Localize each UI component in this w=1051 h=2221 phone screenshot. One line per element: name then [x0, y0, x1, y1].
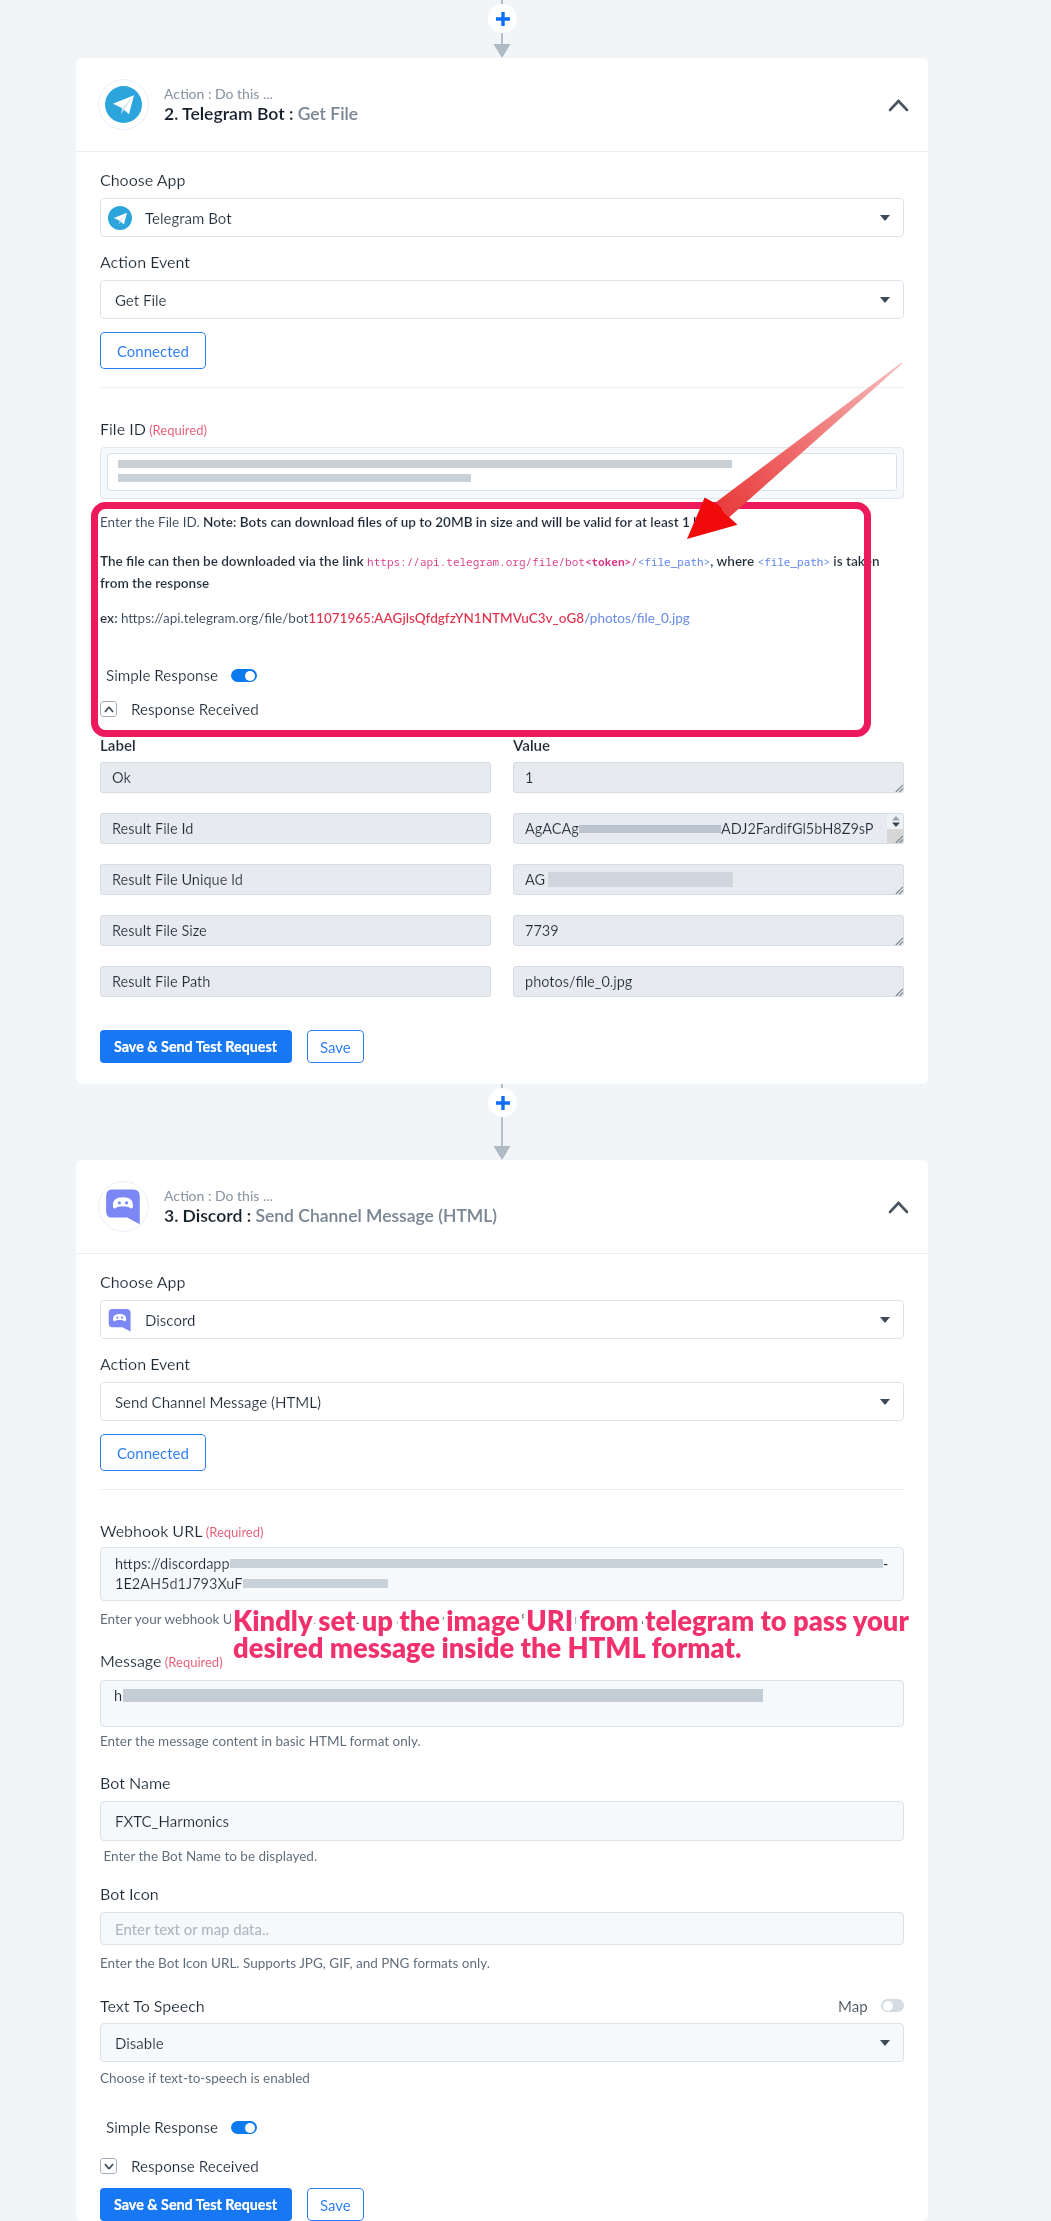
staticText: Simple Response	[106, 2118, 219, 2136]
staticText: Value	[513, 736, 904, 754]
button[interactable]: Simple Response	[100, 666, 257, 684]
button[interactable]: Action : Do this ...	[76, 58, 928, 151]
staticText: Discord	[145, 1311, 196, 1329]
button[interactable]: FXTC_Harmonics	[100, 1801, 904, 1841]
button[interactable]: Turn off	[231, 2121, 257, 2134]
button[interactable]: Result File Id	[100, 813, 491, 844]
staticText: Action : Do this ...	[164, 85, 273, 102]
button[interactable]: Ok	[100, 762, 491, 793]
staticText: 2. Telegram Bot : Get File	[164, 103, 359, 124]
staticText: AG	[525, 871, 546, 888]
staticText: The file can then be downloaded via the …	[100, 553, 904, 591]
staticText: Get File	[115, 291, 167, 309]
staticText: photos/file_0.jpg	[525, 973, 633, 990]
button[interactable]: Add step	[488, 4, 517, 33]
button[interactable]: 7739	[513, 915, 904, 946]
button[interactable]: Save & Send Test Request	[100, 2188, 292, 2221]
button[interactable]: Enter text or map data..	[100, 1912, 904, 1945]
button[interactable]: Add step	[488, 1088, 517, 1117]
staticText: Enter the File ID. Note: Bots can downlo…	[100, 514, 722, 530]
button[interactable]: Connected	[100, 332, 206, 369]
staticText: FXTC_Harmonics	[115, 1812, 230, 1830]
staticText: File ID (Required)	[100, 419, 207, 438]
staticText: Save	[320, 1038, 351, 1056]
staticText: Bot Name	[100, 1773, 171, 1792]
staticText: Send Channel Message (HTML)	[115, 1393, 321, 1411]
button[interactable]: Result File Size	[100, 915, 491, 946]
staticText: 1	[525, 769, 534, 786]
button[interactable]: Result File Path	[100, 966, 491, 997]
button[interactable]: Action : Do this ...	[76, 1160, 928, 1253]
button[interactable]: Response Received	[100, 2157, 259, 2175]
button[interactable]: Save	[307, 1030, 364, 1063]
staticText: Webhook URL (Required)	[100, 1521, 264, 1540]
staticText: Result File Id	[112, 820, 194, 837]
button[interactable]: Connected	[100, 1434, 206, 1471]
staticText: Enter your webhook URL. Follow the steps…	[100, 1611, 668, 1627]
button[interactable]: Get File	[100, 280, 904, 319]
staticText: Action Event	[100, 252, 191, 271]
staticText: Result File Size	[112, 922, 207, 939]
staticText: Simple Response	[106, 666, 219, 684]
button[interactable]: Save	[307, 2188, 364, 2221]
staticText: Ok	[112, 769, 131, 786]
staticText: Bot Icon	[100, 1884, 159, 1903]
staticText: Label	[100, 736, 491, 754]
button[interactable]: https://discordapp	[100, 1547, 904, 1601]
staticText: Save	[320, 2196, 351, 2214]
staticText: Action Event	[100, 1354, 191, 1373]
button[interactable]: Collapse step	[878, 85, 918, 125]
button[interactable]: Disable	[100, 2023, 904, 2062]
staticText: https://discordapp	[115, 1555, 230, 1572]
staticText: Action : Do this ...	[164, 1187, 273, 1204]
staticText: -	[883, 1555, 889, 1572]
staticText: Enter the Bot Icon URL. Supports JPG, GI…	[100, 1955, 490, 1971]
staticText: Result File Path	[112, 973, 211, 990]
staticText: Message (Required)	[100, 1651, 223, 1670]
staticText: Response Received	[131, 2157, 259, 2175]
button[interactable]: Response Received	[100, 700, 259, 718]
staticText: h	[114, 1687, 123, 1704]
staticText: AgACAg	[525, 820, 579, 837]
staticText: Response Received	[131, 700, 259, 718]
button[interactable]: Discord	[100, 1300, 904, 1339]
button[interactable]: 1	[513, 762, 904, 793]
button[interactable]	[100, 447, 904, 499]
staticText: Choose App	[100, 170, 186, 189]
staticText: Enter the message content in basic HTML …	[100, 1733, 421, 1749]
staticText: ADJ2FardifGl5bH8Z9sP	[721, 820, 874, 837]
staticText: Connected	[117, 1444, 189, 1462]
staticText: Connected	[117, 342, 189, 360]
button[interactable]: Save & Send Test Request	[100, 1030, 292, 1063]
button[interactable]: Result File Unique Id	[100, 864, 491, 895]
staticText: Save & Send Test Request	[114, 2196, 278, 2213]
button[interactable]: AgACAg	[513, 813, 904, 844]
staticText: Choose App	[100, 1272, 186, 1291]
staticText: Enter text or map data..	[115, 1920, 270, 1938]
staticText: Choose if text-to-speech is enabled	[100, 2070, 310, 2086]
button[interactable]: Simple Response	[100, 2118, 257, 2136]
staticText: Disable	[115, 2034, 164, 2052]
staticText: Enter the Bot Name to be displayed.	[100, 1848, 318, 1864]
button[interactable]: photos/file_0.jpg	[513, 966, 904, 997]
staticText: Telegram Bot	[145, 209, 232, 227]
button[interactable]: Send Channel Message (HTML)	[100, 1382, 904, 1421]
staticText: Save & Send Test Request	[114, 1038, 278, 1055]
button[interactable]: Turn off	[231, 669, 257, 682]
staticText: 1E2AH5d1J793XuF	[115, 1575, 243, 1592]
button[interactable]: Turn on	[881, 1999, 904, 2012]
staticText: 7739	[525, 922, 559, 939]
staticText: Text To Speech	[100, 1996, 205, 2015]
button[interactable]: h	[100, 1680, 904, 1727]
button[interactable]: Telegram Bot	[100, 198, 904, 237]
button[interactable]: AG	[513, 864, 904, 895]
staticText: ex: https://api.telegram.org/file/bot110…	[100, 610, 690, 626]
button[interactable]: Collapse step	[878, 1187, 918, 1227]
staticText: Map	[838, 1997, 868, 2015]
staticText: Result File Unique Id	[112, 871, 243, 888]
staticText: 3. Discord : Send Channel Message (HTML)	[164, 1205, 497, 1226]
